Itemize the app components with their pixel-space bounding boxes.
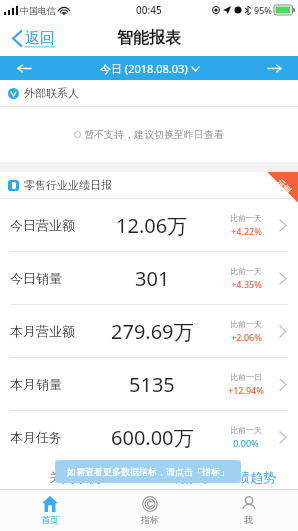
staticText: 本月营业额: [10, 323, 86, 339]
staticText: 智能报表: [117, 28, 181, 48]
staticText: 279.69万: [111, 318, 194, 345]
staticText: 如需查看更多数据指标，请点击「指标」: [67, 466, 229, 477]
button[interactable]: 我: [199, 496, 298, 525]
staticText: 301: [135, 265, 170, 292]
staticText: 00:45: [136, 3, 162, 17]
staticText: 返回: [25, 29, 55, 48]
staticText: +2.06%: [231, 331, 262, 343]
staticText: 比前一天: [230, 319, 262, 329]
staticText: 比前一天: [230, 266, 262, 276]
staticText: 比前一天: [230, 213, 262, 223]
button[interactable]: 今日 (2018.08.03): [100, 61, 199, 76]
staticText: 本月销量: [10, 376, 86, 392]
staticText: 首页: [41, 514, 59, 525]
staticText: 12.06万: [116, 212, 188, 239]
staticText: 外部联系人: [24, 86, 79, 100]
button[interactable]: Next day: [250, 56, 298, 80]
staticText: 零售行业业绩日报: [24, 178, 112, 192]
staticText: +12.94%: [228, 384, 264, 396]
staticText: 比前一天: [230, 425, 262, 435]
button[interactable]: Previous day: [0, 56, 48, 80]
button[interactable]: 本月任务: [0, 411, 298, 463]
staticText: 示例: [275, 177, 293, 195]
button[interactable]: 关闭示例: [0, 469, 149, 485]
button[interactable]: 首页: [0, 496, 100, 525]
button[interactable]: 今日销量: [0, 252, 298, 304]
staticText: 我: [244, 514, 253, 525]
staticText: 今日 (2018.08.03): [100, 61, 188, 76]
staticText: +4.22%: [231, 225, 262, 237]
staticText: 5135: [129, 371, 175, 398]
button[interactable]: 本月营业额: [0, 305, 298, 357]
staticText: 600.00万: [111, 424, 194, 451]
button[interactable]: 返回: [8, 26, 59, 51]
staticText: +4.35%: [231, 278, 262, 290]
staticText: 本月任务: [10, 429, 86, 445]
button[interactable]: 洞察零售业绩趋势: [149, 469, 298, 485]
staticText: 洞察零售业绩趋势: [172, 469, 276, 485]
staticText: 关闭示例: [49, 469, 101, 485]
staticText: 指标: [141, 514, 159, 525]
button[interactable]: 本月销量: [0, 358, 298, 410]
staticText: 比前一日: [230, 372, 262, 382]
staticText: 95%: [254, 4, 272, 16]
staticText: 中国电信: [20, 5, 56, 16]
staticText: 0.00%: [233, 437, 259, 449]
staticText: 暂不支持，建议切换至昨日查看: [84, 128, 224, 141]
staticText: 今日营业额: [10, 217, 86, 233]
staticText: 今日销量: [10, 270, 86, 286]
button[interactable]: 今日营业额: [0, 199, 298, 251]
button[interactable]: 指标: [100, 496, 199, 525]
